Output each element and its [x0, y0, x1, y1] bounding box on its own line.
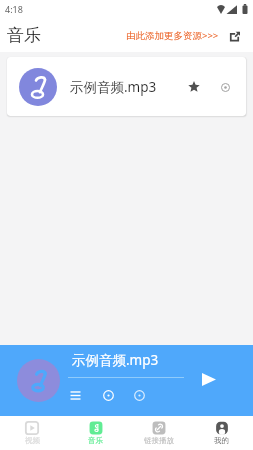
button[interactable]: Settings [130, 386, 148, 404]
staticText: 我的 [214, 436, 229, 445]
button[interactable]: Favorite [184, 77, 204, 97]
button[interactable]: Open externally [226, 28, 242, 44]
staticText: 由此添加更多资源>>> [126, 29, 219, 42]
button[interactable]: More options [215, 77, 235, 97]
staticText: 视频 [25, 436, 40, 445]
staticText: 示例音频.mp3 [72, 351, 159, 369]
button[interactable]: 音乐 [64, 416, 127, 450]
button[interactable]: 由此添加更多资源>>> [125, 26, 220, 45]
button[interactable]: 示例音频.mp3 [7, 57, 246, 116]
button[interactable]: Play [196, 366, 222, 392]
staticText: 音乐 [88, 436, 103, 445]
staticText: 4:18 [5, 3, 23, 15]
button[interactable]: 视频 [0, 416, 64, 450]
button[interactable]: Sleep timer [99, 386, 117, 404]
button[interactable]: Playlist [66, 386, 84, 404]
button[interactable]: 链接播放 [127, 416, 190, 450]
staticText: 链接播放 [144, 436, 174, 445]
staticText: 音乐 [7, 25, 41, 46]
button[interactable]: 我的 [190, 416, 253, 450]
staticText: 示例音频.mp3 [70, 78, 157, 96]
